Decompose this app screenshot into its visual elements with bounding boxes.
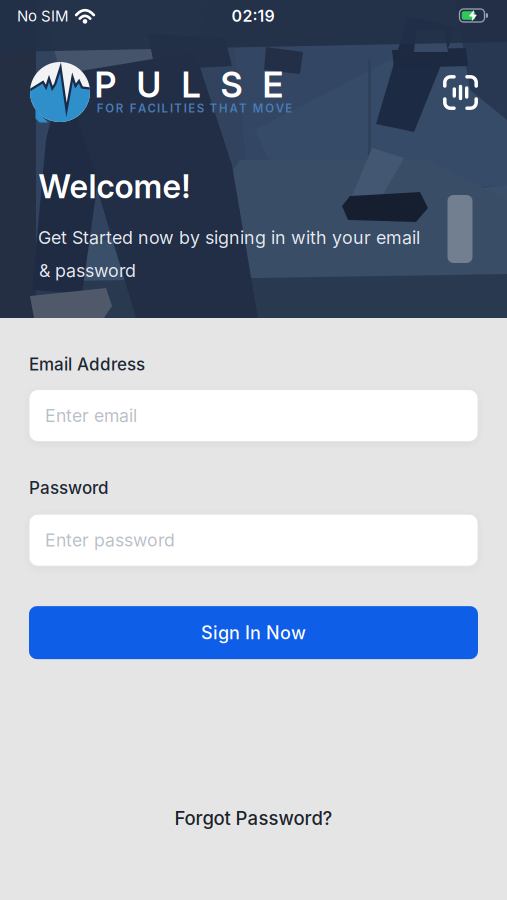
staticText: O	[105, 101, 114, 115]
staticText: & password	[39, 260, 136, 281]
staticText: S	[197, 101, 204, 115]
staticText: P	[94, 64, 116, 106]
staticText: Welcome!	[38, 167, 190, 206]
staticText: H	[219, 101, 228, 115]
button[interactable]: Enter email	[29, 390, 478, 442]
staticText: I	[170, 101, 173, 115]
staticText: Password	[29, 478, 109, 498]
staticText: I	[184, 101, 187, 115]
staticText: T	[210, 101, 218, 115]
staticText: E	[188, 101, 195, 115]
staticText: L	[181, 64, 200, 106]
staticText: E	[285, 101, 292, 115]
staticText: E	[262, 64, 283, 106]
staticText: Enter password	[45, 529, 175, 551]
button[interactable]: Forgot Password?	[174, 807, 332, 829]
staticText: F	[97, 101, 104, 115]
staticText: No SIM	[17, 7, 69, 25]
button[interactable]: Sign In Now	[29, 606, 478, 659]
staticText: Get Started now by signing in with your …	[38, 227, 420, 248]
staticText: C	[147, 101, 155, 115]
staticText: 02:19	[231, 6, 274, 26]
staticText: I	[157, 101, 160, 115]
staticText: F	[130, 101, 137, 115]
staticText: Enter email	[45, 405, 137, 426]
staticText: A	[229, 101, 237, 115]
staticText: T	[174, 101, 182, 115]
staticText: Sign In Now	[201, 622, 306, 643]
button[interactable]: Scan	[443, 75, 478, 110]
staticText: V	[276, 101, 284, 115]
staticText: M	[253, 101, 264, 115]
staticText: A	[138, 101, 146, 115]
staticText: Forgot Password?	[174, 807, 332, 829]
staticText: R	[116, 101, 124, 115]
staticText: Email Address	[29, 354, 145, 375]
staticText: S	[220, 64, 242, 106]
staticText: T	[239, 101, 247, 115]
staticText: L	[161, 101, 168, 115]
staticText: O	[265, 101, 274, 115]
staticText: U	[136, 64, 161, 106]
button[interactable]: Enter password	[29, 514, 478, 566]
